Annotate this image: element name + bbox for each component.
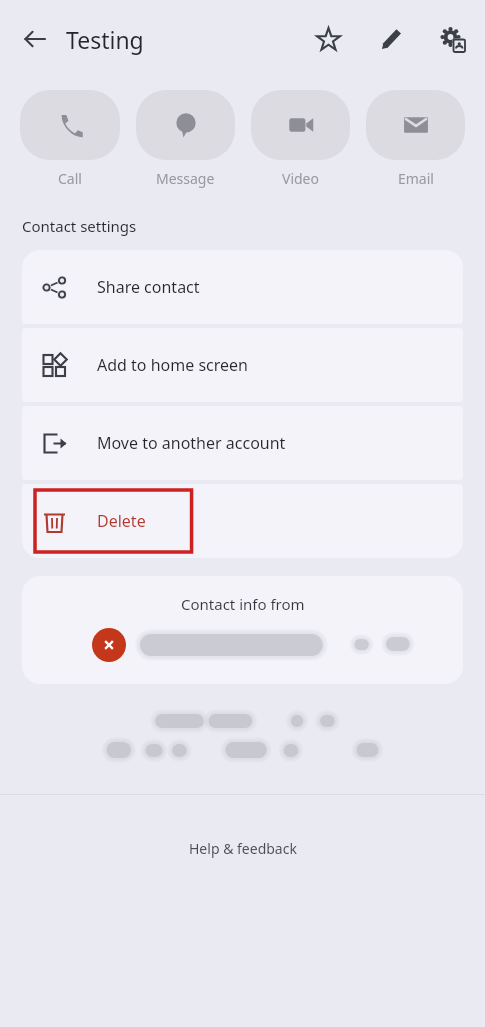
staticText: Move to another account (97, 432, 286, 454)
button[interactable]: Move to another account (22, 406, 463, 480)
button[interactable]: Video (251, 90, 350, 160)
staticText: Call (58, 169, 82, 188)
button[interactable]: Email (366, 90, 465, 160)
staticText: Help & feedback (189, 839, 297, 858)
button[interactable]: Delete (22, 484, 463, 558)
staticText: Contact settings (22, 216, 137, 236)
staticText: Add to home screen (97, 354, 248, 376)
staticText: Message (156, 169, 215, 188)
button[interactable]: Message (136, 90, 235, 160)
staticText: Delete (97, 510, 146, 532)
button[interactable]: Favourite (305, 16, 351, 62)
button[interactable]: Call (20, 90, 120, 160)
button[interactable]: Contact settings (429, 16, 475, 62)
button[interactable]: Help & feedback (179, 835, 307, 862)
staticText: Video (282, 169, 319, 188)
button[interactable]: Share contact (22, 250, 463, 324)
staticText: Contact info from (181, 594, 305, 614)
staticText: Email (398, 169, 434, 188)
button[interactable]: Back (12, 16, 58, 62)
button[interactable]: Contact info from (22, 576, 463, 684)
staticText: Testing (66, 24, 144, 55)
button[interactable]: Edit (369, 16, 415, 62)
button[interactable]: Add to home screen (22, 328, 463, 402)
staticText: Share contact (97, 276, 200, 298)
